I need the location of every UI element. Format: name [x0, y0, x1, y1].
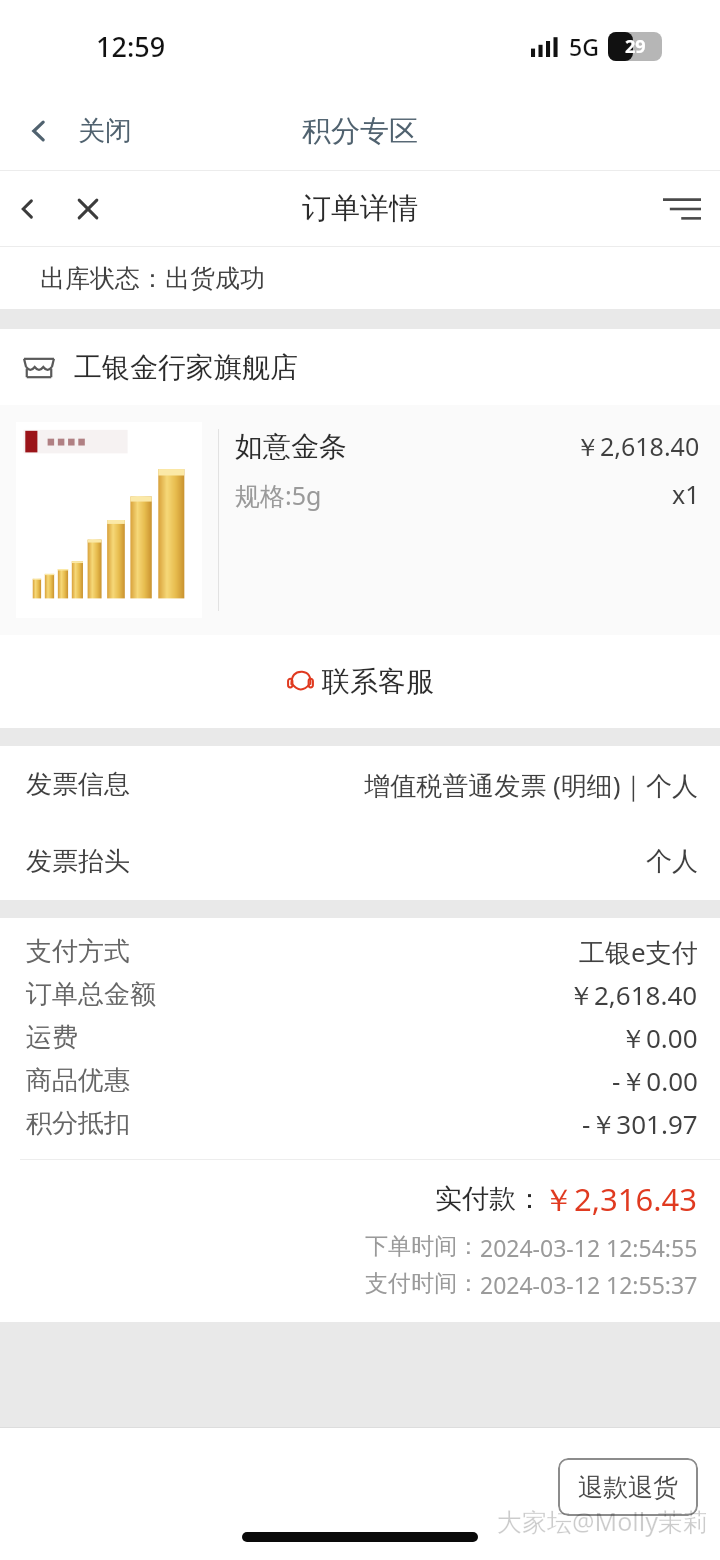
staticText: 订单总金额 — [26, 978, 156, 1011]
button[interactable]: Close — [56, 174, 120, 244]
staticText: 发票抬头 — [26, 845, 130, 878]
staticText: 发票信息 — [26, 768, 130, 801]
staticText: 支付方式 — [26, 935, 130, 968]
staticText: 规格:5g — [235, 478, 322, 512]
staticText: 实付款： — [435, 1182, 543, 1216]
staticText: 订单详情 — [302, 190, 418, 227]
staticText: 出库状态： — [40, 263, 165, 294]
staticText: 增值税普通发票 (明细)｜个人 — [364, 767, 698, 803]
staticText: 运费 — [26, 1021, 78, 1054]
staticText: 2024-03-12 12:55:37 — [480, 1269, 698, 1300]
staticText: 积分抵扣 — [26, 1107, 130, 1140]
staticText: ￥2,618.40 — [575, 429, 700, 463]
button[interactable]: 发票信息 — [0, 746, 720, 823]
button[interactable]: 关闭 — [0, 114, 148, 148]
staticText: 出货成功 — [165, 263, 265, 294]
button[interactable]: Back — [0, 174, 56, 244]
button[interactable]: 出库状态： — [0, 247, 720, 309]
staticText: -￥0.00 — [612, 1063, 698, 1099]
staticText: x1 — [672, 477, 700, 511]
staticText: 积分专区 — [302, 113, 418, 150]
staticText: 商品优惠 — [26, 1064, 130, 1097]
button[interactable]: Menu — [644, 174, 720, 244]
staticText: 2024-03-12 12:54:55 — [480, 1232, 698, 1263]
staticText: -￥301.97 — [582, 1106, 698, 1142]
staticText: 支付时间： — [365, 1269, 480, 1298]
staticText: 退款退货 — [578, 1472, 678, 1503]
staticText: 12:59 — [96, 28, 166, 65]
staticText: 如意金条 — [235, 429, 347, 464]
button[interactable]: 工银金行家旗舰店 — [0, 329, 720, 405]
staticText: ￥0.00 — [620, 1020, 698, 1056]
staticText: 5G — [569, 31, 599, 62]
staticText: 29 — [625, 34, 646, 59]
button[interactable]: 发票抬头 — [0, 823, 720, 900]
button[interactable]: 联系客服 — [269, 654, 452, 709]
staticText: 关闭 — [78, 114, 132, 148]
staticText: 工银金行家旗舰店 — [74, 350, 298, 385]
staticText: 工银e支付 — [579, 934, 698, 970]
staticText: ￥2,316.43 — [543, 1178, 698, 1220]
button[interactable]: 退款退货 — [558, 1458, 698, 1516]
staticText: 联系客服 — [322, 664, 434, 699]
staticText: 大家坛@Molly茉莉 — [497, 1504, 708, 1538]
staticText: 个人 — [646, 845, 698, 878]
button[interactable]: 如意金条 — [0, 405, 720, 635]
staticText: ￥2,618.40 — [568, 977, 698, 1013]
staticText: 下单时间： — [365, 1232, 480, 1261]
